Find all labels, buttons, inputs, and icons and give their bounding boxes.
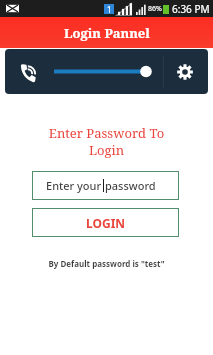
staticText: 1 xyxy=(107,4,112,14)
button[interactable]: Enter your xyxy=(32,171,179,200)
staticText: Enter your xyxy=(46,178,102,193)
staticText: LOGIN xyxy=(86,215,126,231)
button[interactable]: Settings xyxy=(173,60,197,84)
staticText: By Default password is "test" xyxy=(0,258,213,269)
staticText: Enter Password To Login xyxy=(0,124,213,159)
button[interactable]: LOGIN xyxy=(32,208,179,237)
staticText: password xyxy=(105,178,156,193)
staticText: Login Pannel xyxy=(64,24,150,42)
button[interactable]: Call xyxy=(16,60,40,84)
staticText: 6:36 PM xyxy=(172,2,210,16)
staticText: 86% xyxy=(148,4,162,14)
button[interactable] xyxy=(51,61,151,83)
